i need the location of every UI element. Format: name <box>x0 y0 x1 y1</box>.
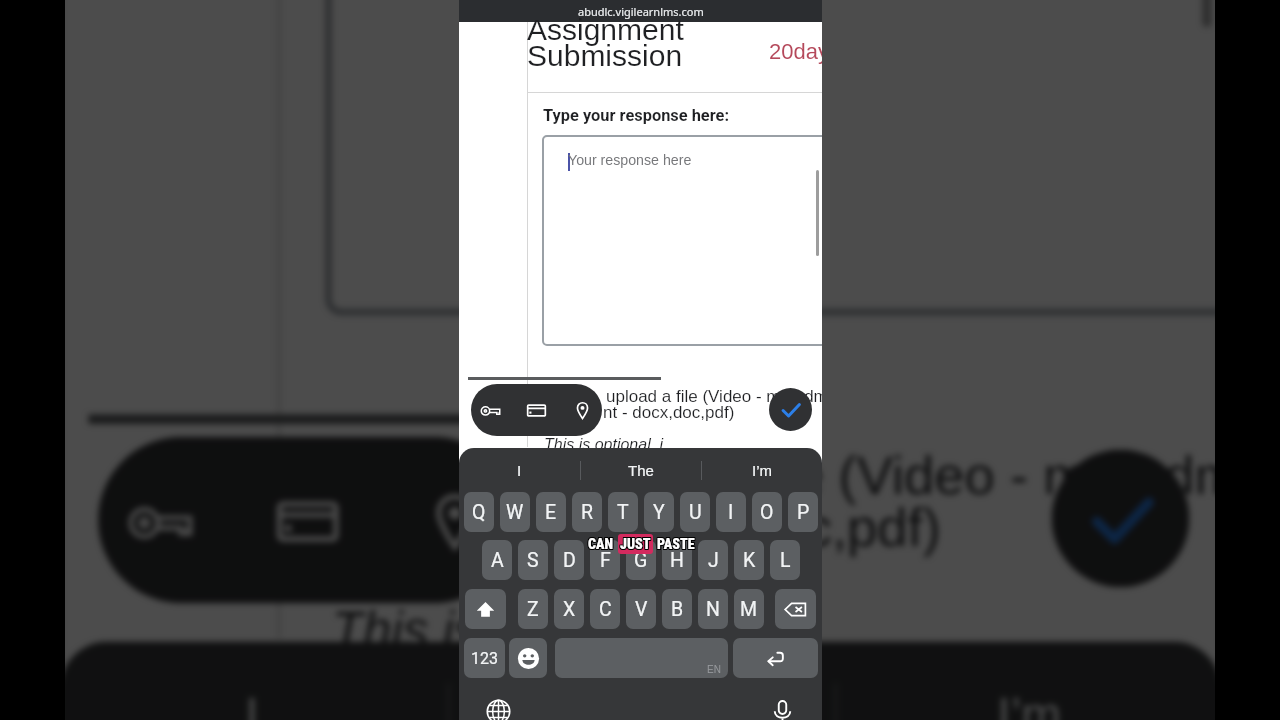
staticText: J <box>708 549 719 572</box>
staticText: R <box>581 501 594 524</box>
staticText: I’m <box>752 462 772 479</box>
button[interactable]: I <box>459 448 580 492</box>
staticText: B <box>671 598 684 621</box>
staticText: PASTE <box>656 536 694 552</box>
button[interactable]: Addresses <box>569 397 595 423</box>
button[interactable]: 123 <box>464 638 505 678</box>
staticText: nt - docx,doc,pdf) <box>603 403 735 422</box>
staticText: CAN <box>589 536 615 552</box>
button[interactable]: I’m <box>702 448 822 492</box>
staticText: 20days <box>769 39 822 64</box>
button[interactable]: B <box>662 589 692 629</box>
staticText: N <box>706 598 720 621</box>
button[interactable]: X <box>554 589 584 629</box>
staticText: CAN <box>587 536 613 552</box>
staticText: JUST <box>621 536 652 552</box>
button[interactable]: S <box>518 540 548 580</box>
button[interactable]: Q <box>464 492 494 532</box>
button[interactable]: C <box>590 589 620 629</box>
staticText: This is optional, i <box>544 436 664 454</box>
button[interactable]: V <box>626 589 656 629</box>
staticText: CAN <box>588 537 614 553</box>
button[interactable]: T <box>608 492 638 532</box>
staticText: CAN <box>587 535 613 551</box>
staticText: upload a file (Video - mp4,dma <box>606 387 822 406</box>
button[interactable]: G <box>626 540 656 580</box>
button[interactable]: H <box>662 540 692 580</box>
button[interactable]: F <box>590 540 620 580</box>
button[interactable]: I <box>65 642 447 720</box>
button[interactable]: P <box>788 492 818 532</box>
staticText: Q <box>472 501 486 524</box>
button[interactable]: E <box>536 492 566 532</box>
button[interactable]: Passwords <box>477 397 503 423</box>
staticText: PASTE <box>656 535 694 551</box>
staticText: abudlc.vigilearnlms.com <box>578 4 704 19</box>
button[interactable]: Submit <box>1052 450 1189 587</box>
staticText: O <box>760 501 774 524</box>
staticText: H <box>670 549 684 572</box>
staticText: PASTE <box>657 537 695 553</box>
button[interactable]: backspace <box>775 589 816 629</box>
button[interactable]: The <box>450 642 834 720</box>
button[interactable]: The <box>581 448 701 492</box>
button[interactable]: Passwords <box>117 478 200 562</box>
staticText: Assignment Submission <box>527 13 684 73</box>
staticText: JUST <box>620 535 651 551</box>
button[interactable]: enter <box>733 638 818 678</box>
button[interactable]: U <box>680 492 710 532</box>
staticText: E <box>545 501 557 524</box>
staticText: P <box>797 501 810 524</box>
button[interactable]: A <box>482 540 512 580</box>
staticText: S <box>527 549 539 572</box>
staticText: PASTE <box>657 536 695 552</box>
button[interactable]: Addresses <box>412 478 495 562</box>
staticText: A <box>491 549 504 572</box>
staticText: PASTE <box>658 535 696 551</box>
button[interactable]: Z <box>518 589 548 629</box>
button[interactable]: Autofill suggestions <box>471 384 602 436</box>
button[interactable]: R <box>572 492 602 532</box>
button[interactable]: W <box>500 492 530 532</box>
staticText: I <box>517 462 522 479</box>
button[interactable]: Payment cards <box>523 397 549 423</box>
button[interactable]: emoji <box>509 638 547 678</box>
button[interactable]: D <box>554 540 584 580</box>
staticText: F <box>600 549 611 572</box>
staticText: L <box>780 549 791 572</box>
staticText: JUST <box>621 535 652 551</box>
staticText: G <box>634 549 648 572</box>
button[interactable]: Y <box>644 492 674 532</box>
staticText: Type your response here: <box>543 106 730 125</box>
button[interactable]: shift <box>465 589 506 629</box>
button[interactable]: Autofill suggestions <box>98 437 517 603</box>
staticText: C <box>599 598 612 621</box>
staticText: EN <box>707 664 721 675</box>
button[interactable]: M <box>734 589 764 629</box>
staticText: Your response here <box>568 152 692 168</box>
button[interactable]: Submit <box>769 388 812 431</box>
button[interactable]: Voice input <box>756 694 808 720</box>
button[interactable]: J <box>698 540 728 580</box>
button[interactable]: Space <box>555 638 728 678</box>
staticText: JUST <box>619 537 650 553</box>
button[interactable]: O <box>752 492 782 532</box>
staticText: JUST <box>620 537 651 553</box>
staticText: T <box>617 501 629 524</box>
button[interactable]: K <box>734 540 764 580</box>
button[interactable]: N <box>698 589 728 629</box>
button[interactable]: L <box>770 540 800 580</box>
staticText: K <box>743 549 756 572</box>
button[interactable]: I’m <box>837 642 1215 720</box>
staticText: CAN <box>589 535 615 551</box>
staticText: JUST <box>621 537 652 553</box>
button[interactable]: Payment cards <box>264 478 348 562</box>
button[interactable]: Change language <box>472 694 524 720</box>
staticText: The <box>628 462 654 479</box>
staticText: upload a file (Video - mp4,dma <box>530 446 1215 507</box>
staticText: Z <box>527 598 539 621</box>
staticText: CAN <box>589 537 615 553</box>
button[interactable]: I <box>716 492 746 532</box>
staticText: CAN <box>588 535 614 551</box>
